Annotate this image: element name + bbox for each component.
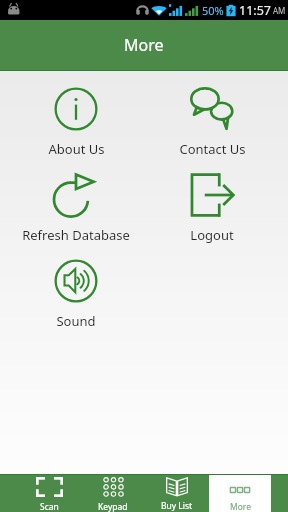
staticText: Sound — [56, 312, 96, 330]
button[interactable]: Keypad — [81, 475, 145, 512]
staticText: About Us — [48, 140, 105, 158]
button[interactable]: About Us — [8, 87, 144, 173]
button[interactable]: Refresh Database — [8, 173, 144, 259]
staticText: AM — [273, 5, 286, 16]
staticText: 11:57 — [239, 2, 271, 19]
staticText: 50% — [202, 3, 224, 18]
staticText: More — [230, 501, 251, 512]
staticText: Buy List — [161, 500, 193, 512]
button[interactable]: Scan — [17, 475, 81, 512]
staticText: Keypad — [98, 501, 128, 512]
staticText: Refresh Database — [22, 226, 130, 244]
button[interactable]: Contact Us — [144, 87, 280, 173]
staticText: More — [124, 34, 164, 56]
button[interactable]: Sound — [8, 259, 144, 345]
button[interactable]: More — [209, 475, 271, 512]
staticText: Scan — [40, 501, 59, 512]
button[interactable]: Logout — [144, 173, 280, 259]
staticText: Contact Us — [179, 140, 246, 158]
button[interactable]: Buy List — [145, 475, 209, 512]
staticText: Logout — [190, 226, 234, 244]
